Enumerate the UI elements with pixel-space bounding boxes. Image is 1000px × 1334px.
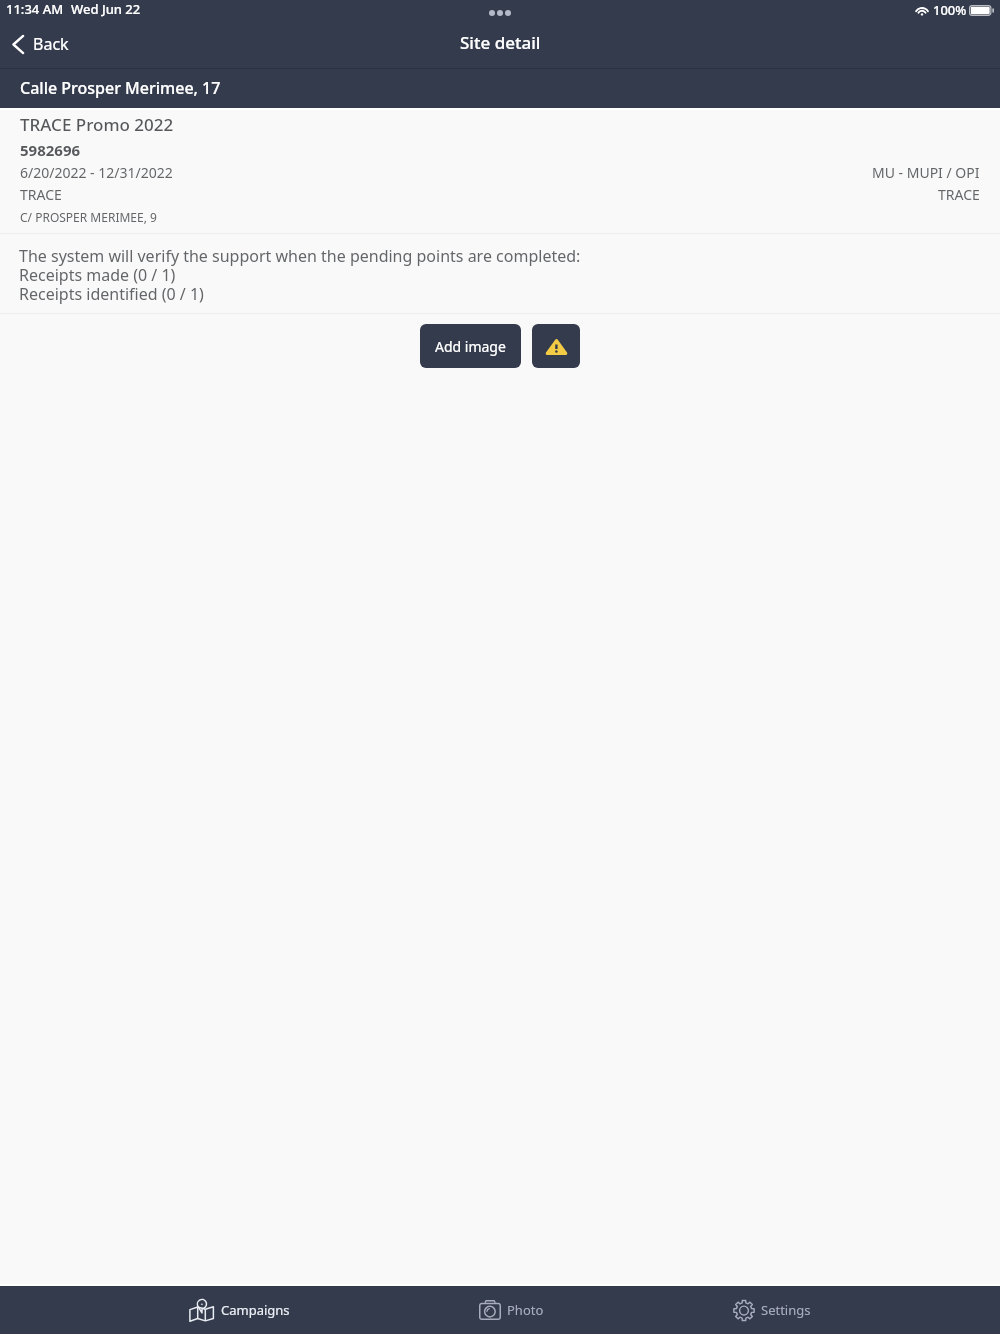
staticText: MU - MUPI / OPI	[872, 163, 980, 182]
staticText: Calle Prosper Merimee, 17	[20, 77, 221, 99]
staticText: 5982696	[20, 140, 81, 160]
button[interactable]: Campaigns	[189, 1286, 290, 1334]
staticText: TRACE	[938, 185, 980, 204]
button[interactable]: Settings	[733, 1286, 811, 1334]
staticText: Photo	[507, 1301, 544, 1319]
staticText: Wed Jun 22	[71, 0, 141, 18]
staticText: Campaigns	[221, 1301, 290, 1319]
staticText: The system will verify the support when …	[19, 245, 581, 305]
staticText: 6/20/2022 - 12/31/2022	[20, 163, 173, 182]
staticText: Site detail	[460, 31, 541, 54]
button[interactable]: Photo	[479, 1286, 544, 1334]
button[interactable]: Add image	[420, 324, 521, 368]
button[interactable]: Back	[0, 23, 81, 65]
staticText: Add image	[435, 337, 506, 356]
staticText: C/ PROSPER MERIMEE, 9	[20, 209, 157, 225]
button[interactable]: Report incident	[532, 324, 580, 368]
staticText: 100%	[933, 1, 967, 19]
staticText: 11:34 AM	[6, 0, 64, 18]
staticText: TRACE	[20, 185, 62, 204]
staticText: Settings	[761, 1301, 811, 1319]
staticText: TRACE Promo 2022	[20, 113, 174, 136]
staticText: Back	[33, 33, 69, 55]
